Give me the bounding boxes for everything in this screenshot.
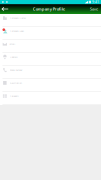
button[interactable]: Email [0, 40, 101, 53]
button[interactable]: Address [0, 53, 101, 66]
staticText: Email [10, 42, 16, 46]
button[interactable]: Phone number [0, 66, 101, 79]
button[interactable]: Company Logo [0, 27, 101, 40]
staticText: Category [10, 94, 19, 98]
staticText: Address [10, 55, 18, 59]
button[interactable]: Company Name [0, 14, 101, 27]
staticText: 9:41 [92, 0, 99, 4]
staticText: Company Profile [33, 6, 65, 12]
staticText: Save [90, 6, 98, 12]
staticText: Phone number [10, 68, 23, 72]
button[interactable]: Category [0, 92, 101, 105]
button[interactable]: Back [0, 4, 10, 14]
staticText: Company Name [10, 16, 26, 20]
staticText: Company Logo [10, 29, 24, 33]
button[interactable]: Save [87, 4, 101, 14]
button[interactable]: Description [0, 79, 101, 92]
staticText: Description [10, 81, 22, 85]
